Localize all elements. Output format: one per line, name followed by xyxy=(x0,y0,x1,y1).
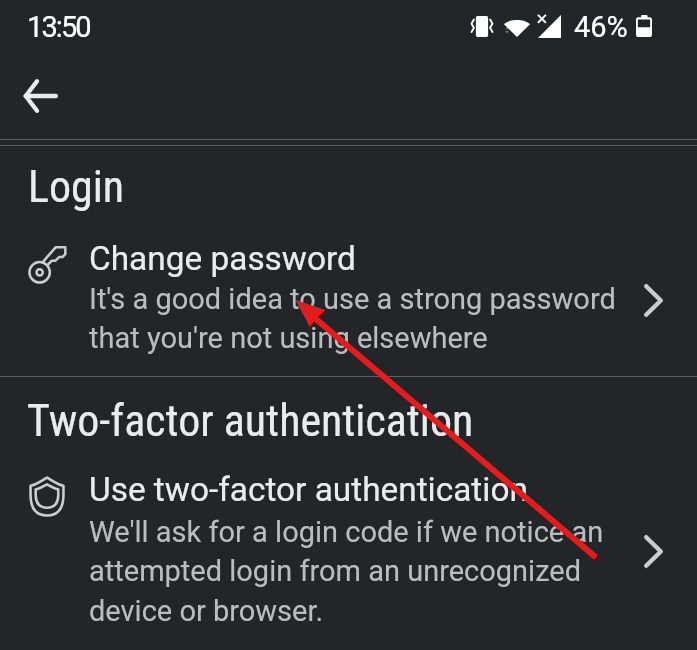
staticText: 46% xyxy=(574,10,628,44)
staticText: Two-factor authentication xyxy=(27,395,474,447)
button[interactable]: Back xyxy=(0,56,82,136)
staticText: 13:50 xyxy=(27,10,90,44)
staticText: It's a good idea to use a strong passwor… xyxy=(89,282,616,356)
button[interactable]: Change password xyxy=(0,226,697,372)
button[interactable]: Use two-factor authentication xyxy=(0,457,697,642)
staticText: Use two-factor authentication xyxy=(89,470,528,509)
staticText: Change password xyxy=(89,239,356,278)
staticText: Login xyxy=(28,161,125,213)
staticText: We'll ask for a login code if we notice … xyxy=(89,515,604,629)
